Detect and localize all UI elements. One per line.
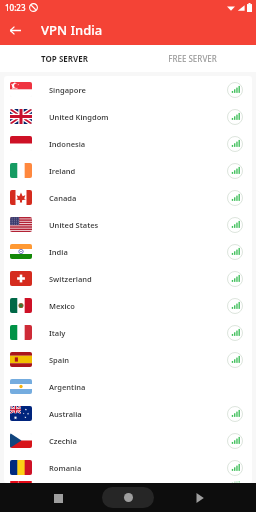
staticText: United States: [49, 220, 99, 230]
staticText: Spain: [49, 355, 70, 365]
button[interactable]: United Kingdom: [4, 103, 252, 130]
button[interactable]: India: [4, 238, 252, 265]
staticText: Singapore: [49, 85, 86, 95]
staticText: VPN India: [41, 21, 103, 39]
button[interactable]: Switzerland: [4, 265, 252, 292]
staticText: Czechia: [49, 436, 77, 446]
staticText: Switzerland: [49, 274, 92, 284]
staticText: United Kingdom: [49, 112, 109, 122]
button[interactable]: Indonesia: [4, 130, 252, 157]
button[interactable]: Canada: [4, 184, 252, 211]
button[interactable]: Back: [190, 488, 210, 508]
button[interactable]: Recents: [48, 488, 68, 508]
staticText: Ireland: [49, 166, 76, 176]
button[interactable]: United States: [4, 211, 252, 238]
button[interactable]: Czechia: [4, 427, 252, 454]
button[interactable]: TOP SERVER: [0, 45, 128, 72]
staticText: Canada: [49, 193, 77, 203]
staticText: Mexico: [49, 301, 75, 311]
staticText: FREE SERVER: [168, 53, 217, 64]
button[interactable]: Back: [4, 19, 26, 41]
button[interactable]: Italy: [4, 319, 252, 346]
staticText: 10:23: [5, 2, 26, 13]
staticText: Indonesia: [49, 139, 86, 149]
button[interactable]: Spain: [4, 346, 252, 373]
staticText: Australia: [49, 409, 82, 419]
staticText: Italy: [49, 328, 66, 338]
button[interactable]: Home: [102, 487, 154, 508]
button[interactable]: Australia: [4, 400, 252, 427]
button[interactable]: Romania: [4, 454, 252, 481]
button[interactable]: FREE SERVER: [128, 45, 256, 72]
staticText: Romania: [49, 463, 82, 473]
button[interactable]: Turkey: [4, 481, 252, 483]
staticText: TOP SERVER: [41, 53, 88, 64]
staticText: India: [49, 247, 68, 257]
button[interactable]: Mexico: [4, 292, 252, 319]
button[interactable]: Ireland: [4, 157, 252, 184]
button[interactable]: Argentina: [4, 373, 252, 400]
button[interactable]: Singapore: [4, 76, 252, 103]
staticText: Argentina: [49, 382, 86, 392]
